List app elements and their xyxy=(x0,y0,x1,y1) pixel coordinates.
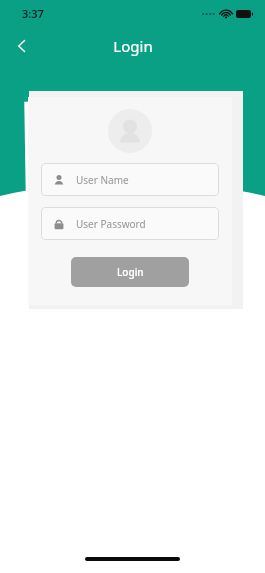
button[interactable]: Login xyxy=(71,257,189,287)
staticText: User Name xyxy=(76,173,129,187)
button[interactable]: User Name xyxy=(41,163,219,196)
staticText: 3:37 xyxy=(22,6,44,21)
button[interactable]: Back xyxy=(4,28,40,64)
staticText: Login xyxy=(117,265,144,279)
staticText: Login xyxy=(113,36,153,56)
button[interactable]: User Password xyxy=(41,207,219,240)
staticText: User Password xyxy=(76,217,146,231)
